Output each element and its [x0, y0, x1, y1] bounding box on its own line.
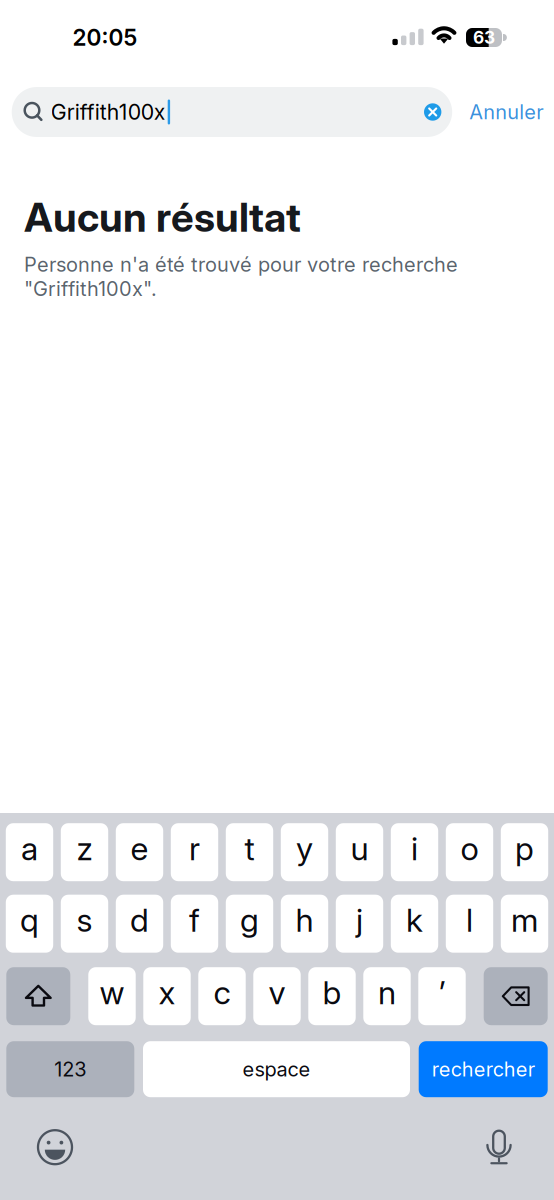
staticText: 63	[473, 27, 495, 48]
button[interactable]: l	[446, 895, 493, 953]
button[interactable]: f	[171, 895, 218, 953]
staticText: Aucun résultat	[24, 193, 301, 241]
staticText: 20:05	[72, 24, 137, 51]
button[interactable]: Clear search text	[423, 102, 452, 122]
button[interactable]: Shift	[6, 967, 70, 1025]
button[interactable]: Emoji keyboard	[18, 1121, 92, 1173]
button[interactable]: t	[226, 823, 273, 881]
button[interactable]: 123	[6, 1041, 134, 1097]
button[interactable]: c	[198, 967, 246, 1025]
staticText: i	[411, 829, 418, 868]
staticText: y	[296, 829, 313, 868]
staticText: t	[244, 829, 254, 868]
staticText: j	[356, 901, 363, 939]
staticText: o	[460, 829, 478, 868]
staticText: 123	[54, 1057, 86, 1081]
button[interactable]: e	[116, 823, 163, 881]
button[interactable]: r	[171, 823, 218, 881]
button[interactable]: Annuler	[452, 87, 554, 137]
button[interactable]: b	[308, 967, 356, 1025]
button[interactable]: espace	[143, 1041, 410, 1097]
staticText: l	[466, 901, 473, 939]
button[interactable]: z	[61, 823, 108, 881]
staticText: h	[295, 901, 313, 939]
staticText: b	[322, 973, 341, 1012]
button[interactable]: q	[6, 895, 53, 953]
staticText: Personne n'a été trouvé pour votre reche…	[24, 252, 458, 301]
button[interactable]: j	[336, 895, 383, 953]
button[interactable]: m	[501, 895, 548, 953]
button[interactable]: k	[391, 895, 438, 953]
button[interactable]: w	[88, 967, 136, 1025]
staticText: n	[378, 973, 396, 1012]
staticText: k	[406, 901, 423, 939]
button[interactable]: g	[226, 895, 273, 953]
staticText: q	[20, 901, 39, 939]
staticText: x	[158, 973, 175, 1012]
button[interactable]: u	[336, 823, 383, 881]
staticText: w	[99, 973, 124, 1012]
button[interactable]: x	[143, 967, 191, 1025]
staticText: s	[76, 901, 92, 939]
button[interactable]: v	[253, 967, 301, 1025]
staticText: Griffith100x	[51, 99, 166, 125]
staticText: r	[189, 829, 200, 868]
button[interactable]: s	[61, 895, 108, 953]
staticText: u	[350, 829, 368, 868]
staticText: f	[189, 901, 200, 939]
staticText: m	[511, 901, 538, 939]
button[interactable]: a	[6, 823, 53, 881]
button[interactable]: rechercher	[419, 1041, 548, 1097]
button[interactable]: n	[363, 967, 411, 1025]
button[interactable]: y	[281, 823, 328, 881]
button[interactable]: d	[116, 895, 163, 953]
staticText: rechercher	[432, 1057, 535, 1081]
button[interactable]: ’	[418, 967, 466, 1025]
button[interactable]: o	[446, 823, 493, 881]
staticText: v	[268, 973, 285, 1012]
staticText: z	[76, 829, 92, 868]
button[interactable]: Delete	[484, 967, 548, 1025]
staticText: p	[515, 829, 534, 868]
staticText: e	[130, 829, 148, 868]
staticText: c	[213, 973, 230, 1012]
button[interactable]: p	[501, 823, 548, 881]
staticText: espace	[242, 1057, 310, 1081]
staticText: Annuler	[469, 100, 543, 124]
button[interactable]: h	[281, 895, 328, 953]
button[interactable]: Dictation	[462, 1121, 536, 1173]
staticText: g	[240, 901, 259, 939]
staticText: a	[21, 829, 38, 868]
staticText: ’	[438, 973, 445, 1012]
button[interactable]: i	[391, 823, 438, 881]
staticText: d	[130, 901, 149, 939]
